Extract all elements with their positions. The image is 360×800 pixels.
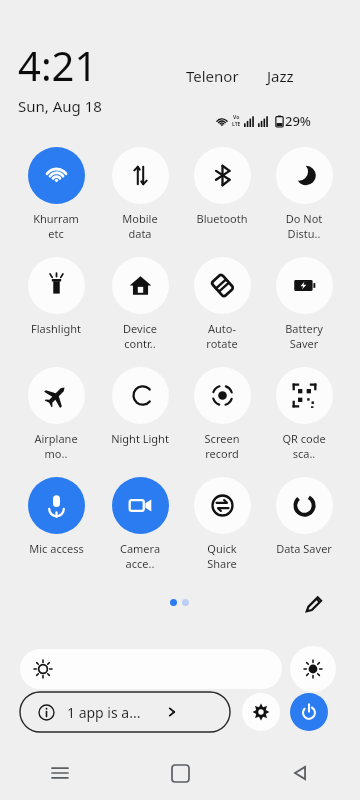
button[interactable]: Brightness — [20, 649, 282, 689]
button[interactable]: Device contr.. — [111, 257, 169, 351]
staticText: Camera acce.. — [111, 541, 169, 571]
staticText: Device contr.. — [111, 321, 169, 351]
button[interactable]: 1 app is a... — [20, 692, 230, 732]
button[interactable]: Home — [120, 746, 240, 800]
button[interactable]: Camera acce.. — [111, 477, 169, 571]
staticText: Mic access — [29, 541, 84, 556]
button[interactable]: Data Saver — [275, 477, 333, 556]
button[interactable]: Screen record — [193, 367, 251, 461]
button[interactable]: Quick Share — [193, 477, 251, 571]
button[interactable]: Bluetooth — [193, 147, 251, 226]
staticText: 1 app is a... — [67, 703, 141, 722]
button[interactable]: Khurram etc — [27, 147, 85, 241]
staticText: Auto-rotate — [193, 321, 251, 351]
staticText: Battery Saver — [275, 321, 333, 351]
button[interactable]: Battery Saver — [275, 257, 333, 351]
staticText: Screen record — [193, 431, 251, 461]
button[interactable]: Mobile data — [111, 147, 169, 241]
staticText: Jazz — [267, 66, 294, 86]
button[interactable]: Auto-rotate — [193, 257, 251, 351]
staticText: Khurram etc — [27, 211, 85, 241]
staticText: Quick Share — [193, 541, 251, 571]
staticText: Data Saver — [276, 541, 332, 556]
staticText: 4:21 — [18, 38, 98, 92]
button[interactable]: QR code sca.. — [275, 367, 333, 461]
button[interactable]: Edit tiles — [300, 591, 326, 617]
button[interactable]: Flashlight — [27, 257, 85, 336]
staticText: QR code sca.. — [275, 431, 333, 461]
staticText: Mobile data — [111, 211, 169, 241]
button[interactable]: Recent apps — [0, 746, 120, 800]
staticText: Flashlight — [31, 321, 81, 336]
button[interactable]: Settings — [242, 693, 280, 731]
button[interactable]: Power — [290, 693, 328, 731]
staticText: Bluetooth — [196, 211, 248, 226]
staticText: Do Not Distu.. — [275, 211, 333, 241]
staticText: Vo — [233, 114, 240, 121]
staticText: 29% — [285, 112, 311, 130]
staticText: Sun, Aug 18 — [18, 96, 102, 116]
button[interactable]: Auto brightness — [290, 646, 336, 692]
button[interactable]: Night Light — [111, 367, 169, 446]
button[interactable]: Airplane mo.. — [27, 367, 85, 461]
button[interactable]: Mic access — [27, 477, 85, 556]
staticText: Telenor — [186, 66, 239, 86]
staticText: Night Light — [111, 431, 169, 446]
button[interactable]: Do Not Distu.. — [275, 147, 333, 241]
staticText: Airplane mo.. — [27, 431, 85, 461]
staticText: LTE — [232, 121, 241, 128]
button[interactable]: Back — [240, 746, 360, 800]
